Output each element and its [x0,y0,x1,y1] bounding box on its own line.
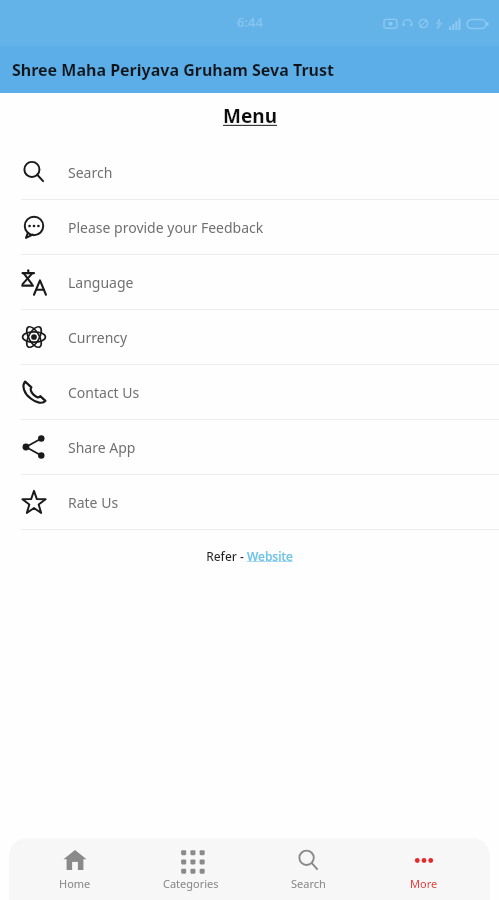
button[interactable]: Language [0,255,499,309]
staticText: Search [291,876,326,891]
staticText: Currency [68,328,128,347]
staticText: Categories [163,876,219,891]
staticText: Rate Us [68,493,119,512]
staticText: Home [59,876,91,891]
staticText: Contact Us [68,383,140,402]
staticText: Search [68,163,113,182]
button[interactable]: Search [0,145,499,199]
button[interactable]: More [374,842,474,897]
staticText: Shree Maha Periyava Gruham Seva Trust [12,59,334,81]
staticText: Language [68,273,134,292]
button[interactable]: Home [25,842,125,897]
staticText: More [410,876,438,891]
button[interactable]: Rate Us [0,475,499,529]
button[interactable]: Search [258,842,358,897]
button[interactable]: Currency [0,310,499,364]
staticText: 6:44 [237,13,263,31]
staticText: Refer - Website [206,548,293,564]
staticText: Please provide your Feedback [68,218,264,237]
button[interactable]: Share App [0,420,499,474]
staticText: Menu [223,103,277,129]
staticText: Share App [68,438,136,457]
button[interactable]: Contact Us [0,365,499,419]
button[interactable]: Please provide your Feedback [0,200,499,254]
button[interactable]: Categories [141,842,241,897]
